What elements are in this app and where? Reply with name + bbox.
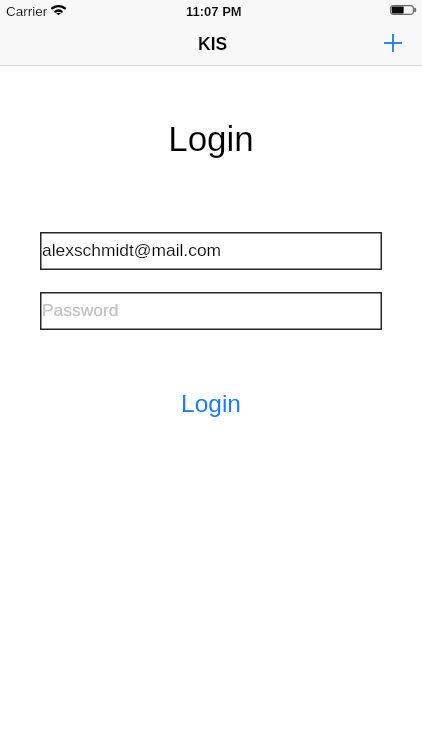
button[interactable]: Add: [371, 21, 415, 65]
button[interactable]: Password: [40, 292, 382, 330]
staticText: Carrier: [6, 4, 48, 19]
staticText: Login: [0, 119, 422, 158]
staticText: 11:07 PM: [186, 4, 242, 19]
staticText: alexschmidt@mail.com: [42, 240, 222, 259]
staticText: Password: [42, 300, 119, 319]
button[interactable]: Login: [167, 385, 255, 422]
staticText: Login: [181, 390, 241, 417]
button[interactable]: alexschmidt@mail.com: [40, 232, 382, 270]
staticText: KIS: [198, 34, 228, 54]
